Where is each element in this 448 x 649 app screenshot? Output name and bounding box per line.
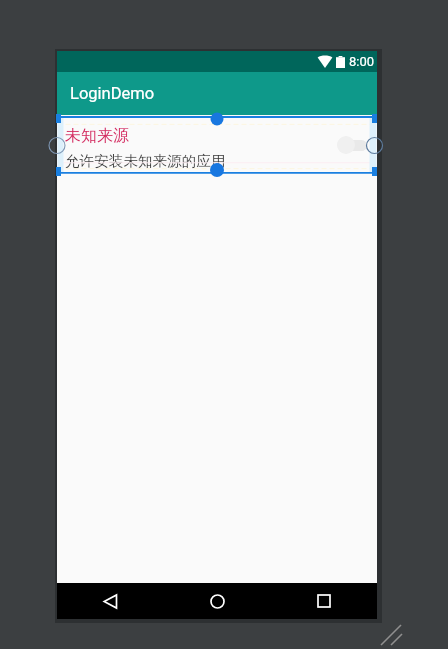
staticText: 未知来源 [65, 126, 129, 146]
button[interactable]: Back [93, 584, 127, 618]
button[interactable]: 未知来源 [57, 117, 377, 173]
button[interactable]: Recent apps [307, 584, 341, 618]
staticText: 8:00 [349, 54, 375, 69]
button[interactable]: Home [200, 584, 234, 618]
staticText: LoginDemo [70, 84, 155, 103]
staticText: 允许安装未知来源的应用 [65, 152, 226, 170]
button[interactable]: Toggle unknown sources [337, 135, 367, 155]
